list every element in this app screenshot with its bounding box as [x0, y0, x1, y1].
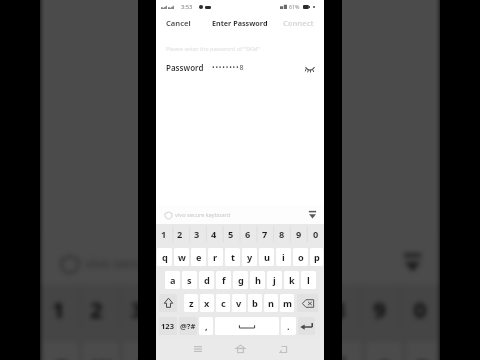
staticText: 9	[373, 294, 388, 325]
button[interactable]: 7	[256, 224, 273, 244]
button[interactable]: p	[310, 248, 323, 266]
button[interactable]: Space	[215, 317, 279, 335]
staticText: 6	[245, 228, 251, 241]
button[interactable]: .	[281, 317, 296, 335]
button[interactable]: Connect	[273, 13, 324, 33]
button[interactable]: w	[174, 248, 189, 266]
button[interactable]: d	[199, 271, 214, 289]
button[interactable]: r	[208, 248, 223, 266]
button[interactable]: @?#	[179, 317, 197, 335]
button[interactable]: ,	[199, 317, 213, 335]
button[interactable]: Password	[156, 60, 324, 75]
staticText: @?#	[180, 321, 196, 331]
button[interactable]: 9	[359, 285, 399, 332]
button[interactable]: k	[284, 271, 299, 289]
staticText: 8	[279, 228, 285, 241]
button[interactable]: 1	[40, 285, 78, 332]
button[interactable]: q	[157, 248, 172, 266]
staticText: 5	[228, 228, 234, 241]
button[interactable]: b	[248, 294, 262, 312]
button[interactable]: e	[191, 248, 206, 266]
button[interactable]: y	[242, 248, 257, 266]
staticText: k	[289, 274, 295, 287]
button[interactable]: n	[264, 294, 278, 312]
button[interactable]: Cancel	[156, 13, 201, 33]
button[interactable]: Home	[230, 339, 250, 359]
staticText: 4	[211, 228, 217, 241]
button[interactable]: Enter	[298, 317, 315, 335]
staticText: x	[204, 297, 210, 310]
button[interactable]: f	[216, 271, 231, 289]
staticText: ,	[205, 320, 208, 333]
button[interactable]: 3	[188, 224, 205, 244]
button[interactable]: i	[276, 248, 291, 266]
button[interactable]: c	[216, 294, 230, 312]
button[interactable]: 5	[222, 224, 239, 244]
button[interactable]: 9	[290, 224, 307, 244]
button[interactable]: 6	[239, 224, 256, 244]
button[interactable]: x	[200, 294, 214, 312]
button[interactable]: r	[164, 342, 199, 360]
button[interactable]: u	[259, 248, 274, 266]
staticText: Enter Password	[212, 18, 268, 28]
staticText: 9	[296, 228, 302, 241]
staticText: .	[287, 320, 290, 333]
button[interactable]: 8	[318, 285, 359, 332]
button[interactable]: z	[184, 294, 198, 312]
button[interactable]: Shift	[159, 294, 177, 312]
button[interactable]: q	[42, 342, 78, 360]
staticText: 61%	[289, 3, 300, 10]
button[interactable]: s	[182, 271, 197, 289]
staticText: 3	[130, 294, 145, 325]
staticText: 3:53	[181, 3, 193, 11]
button[interactable]: 4	[157, 285, 197, 332]
button[interactable]: 5	[197, 285, 238, 332]
staticText: s	[187, 274, 192, 287]
button[interactable]: Back	[273, 339, 293, 359]
button[interactable]: 123	[159, 317, 177, 335]
button[interactable]: g	[233, 271, 248, 289]
button[interactable]: 7	[278, 285, 319, 332]
button[interactable]: 8	[273, 224, 290, 244]
button[interactable]: o	[293, 248, 308, 266]
button[interactable]: 2	[172, 224, 188, 244]
button[interactable]: u	[285, 342, 321, 360]
button[interactable]: a	[165, 271, 180, 289]
button[interactable]: 0	[399, 285, 440, 332]
staticText: 8	[333, 294, 347, 325]
staticText: l	[307, 274, 310, 287]
staticText: b	[252, 297, 258, 310]
button[interactable]: 2	[78, 285, 116, 332]
button[interactable]: 1	[156, 224, 172, 244]
button[interactable]: m	[280, 294, 294, 312]
staticText: vivo secure keyboard	[85, 254, 219, 273]
button[interactable]: Show password	[304, 62, 316, 74]
staticText: vivo secure keyboard	[175, 211, 231, 219]
staticText: 0	[414, 294, 428, 325]
button[interactable]: v	[232, 294, 246, 312]
button[interactable]: j	[267, 271, 282, 289]
button[interactable]: t	[225, 248, 240, 266]
button[interactable]: p	[407, 342, 437, 360]
staticText: z	[189, 297, 194, 310]
button[interactable]: Hide keyboard	[307, 209, 318, 220]
button[interactable]: Backspace	[297, 294, 318, 312]
staticText: n	[268, 297, 274, 310]
button[interactable]: 6	[238, 285, 278, 332]
button[interactable]: 3	[116, 285, 157, 332]
staticText: 1	[161, 228, 167, 241]
button[interactable]: l	[301, 271, 316, 289]
button[interactable]: 4	[205, 224, 222, 244]
button[interactable]: t	[204, 342, 240, 360]
button[interactable]: 0	[307, 224, 324, 244]
button[interactable]: i	[326, 342, 361, 360]
button[interactable]: Hide keyboard	[399, 249, 426, 275]
button[interactable]: h	[250, 271, 265, 289]
button[interactable]: e	[123, 342, 159, 360]
staticText: t	[231, 251, 235, 264]
button[interactable]: Recents	[188, 339, 208, 359]
